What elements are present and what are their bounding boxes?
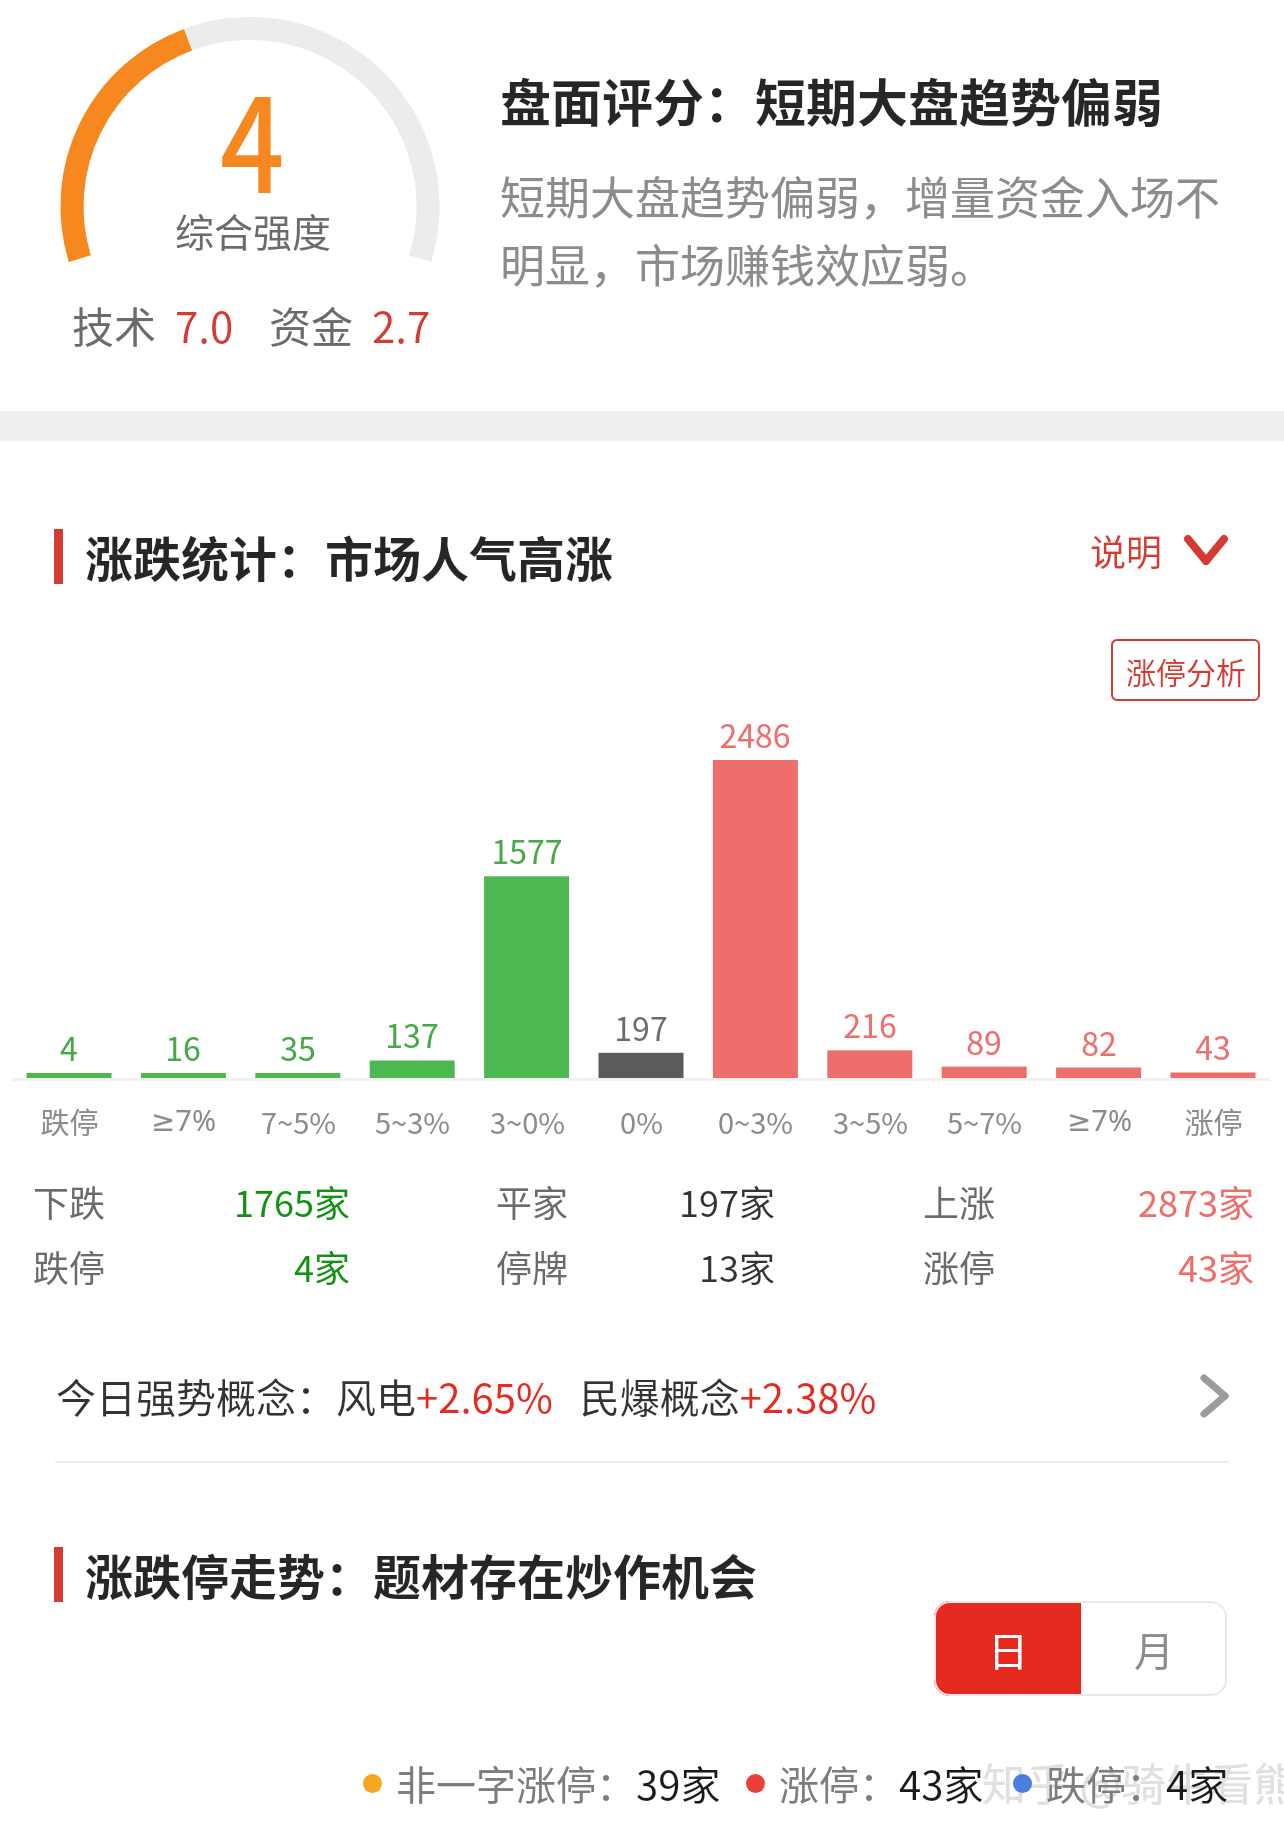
- staticText: 资金: [269, 294, 354, 355]
- staticText: 3~0%: [490, 1100, 565, 1142]
- staticText: 跌停：4家: [1046, 1754, 1229, 1812]
- staticText: 5~7%: [947, 1100, 1022, 1142]
- staticText: ≥7%: [151, 1100, 216, 1139]
- staticText: 综合强度: [175, 202, 332, 258]
- button[interactable]: 说明: [1090, 524, 1227, 576]
- staticText: 82: [1081, 1019, 1117, 1065]
- staticText: 涨跌统计：市场人气高涨: [85, 521, 614, 591]
- staticText: 137: [385, 1011, 439, 1057]
- staticText: 1765家: [106, 1175, 350, 1227]
- staticText: 盘面评分：短期大盘趋势偏弱: [500, 63, 1164, 137]
- staticText: 涨跌停走势：题材存在炒作机会: [85, 1539, 758, 1609]
- button[interactable]: 日: [934, 1601, 1081, 1696]
- staticText: ≥7%: [1067, 1100, 1132, 1139]
- staticText: 43: [1195, 1023, 1231, 1069]
- staticText: 13家: [569, 1240, 775, 1292]
- other: More: [1201, 1375, 1228, 1417]
- staticText: 216: [843, 1001, 897, 1047]
- staticText: 43家: [996, 1240, 1254, 1292]
- staticText: 涨停：43家: [779, 1754, 984, 1812]
- staticText: 知乎 @骑牛看熊: [982, 1750, 1284, 1814]
- staticText: 1577: [491, 827, 563, 873]
- staticText: 涨停: [1184, 1100, 1243, 1142]
- staticText: 下跌: [33, 1175, 106, 1227]
- staticText: 日: [988, 1620, 1028, 1678]
- staticText: 4家: [106, 1240, 350, 1292]
- staticText: 2.7: [372, 294, 431, 355]
- staticText: 7~5%: [261, 1100, 336, 1142]
- staticText: 月: [1134, 1620, 1174, 1678]
- staticText: 16: [165, 1024, 201, 1070]
- staticText: 7.0: [175, 294, 234, 355]
- staticText: 197家: [569, 1175, 775, 1227]
- staticText: 平家: [496, 1175, 569, 1227]
- staticText: 5~3%: [375, 1100, 450, 1142]
- staticText: 3~5%: [833, 1100, 908, 1142]
- staticText: 技术: [72, 294, 157, 355]
- staticText: 涨停: [923, 1240, 996, 1292]
- staticText: 89: [966, 1018, 1002, 1064]
- staticText: 跌停: [33, 1240, 106, 1292]
- staticText: 跌停: [40, 1100, 99, 1142]
- staticText: 35: [280, 1024, 316, 1070]
- button[interactable]: 月: [1081, 1601, 1227, 1696]
- staticText: 2486: [719, 711, 791, 757]
- staticText: 0~3%: [718, 1100, 793, 1142]
- staticText: 197: [614, 1004, 668, 1050]
- staticText: 4: [220, 42, 285, 230]
- staticText: 4: [60, 1024, 78, 1070]
- other: Expand: [1185, 535, 1227, 565]
- staticText: 2873家: [996, 1175, 1254, 1227]
- button[interactable]: 今日强势概念：风电+2.65% 民爆概念+2.38%: [0, 1351, 1284, 1441]
- button[interactable]: 涨停分析: [1111, 639, 1260, 701]
- staticText: 涨停分析: [1126, 649, 1246, 692]
- staticText: 短期大盘趋势偏弱，增量资金入场不明显，市场赚钱效应弱。: [500, 163, 1248, 296]
- staticText: 0%: [620, 1100, 663, 1142]
- staticText: 停牌: [496, 1240, 569, 1292]
- staticText: 今日强势概念：风电+2.65% 民爆概念+2.38%: [56, 1367, 877, 1425]
- staticText: 上涨: [923, 1175, 996, 1227]
- staticText: 说明: [1090, 524, 1163, 576]
- staticText: 非一字涨停：39家: [396, 1754, 721, 1812]
